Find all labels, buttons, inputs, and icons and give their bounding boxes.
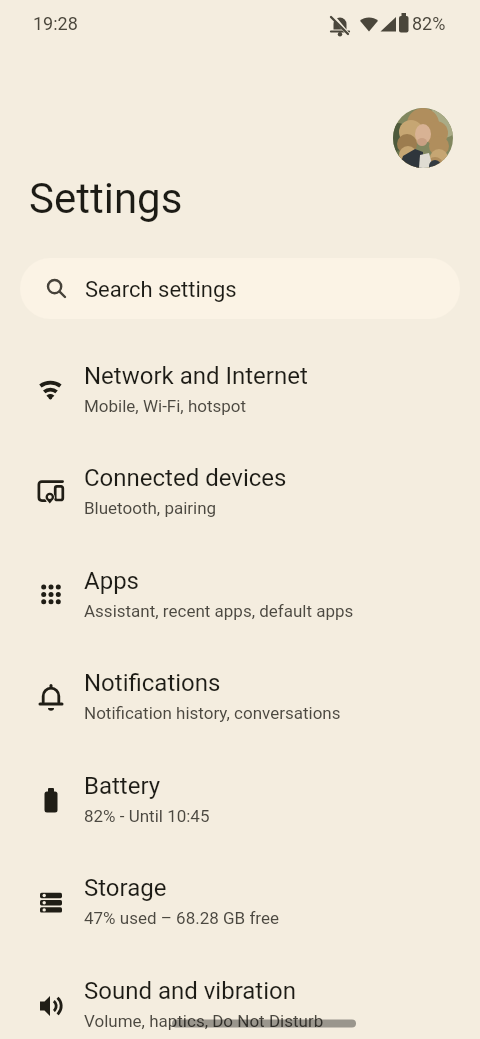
staticText: Sound and vibration <box>84 977 296 1005</box>
staticText: Volume, haptics, Do Not Disturb <box>84 1011 324 1031</box>
button[interactable]: Battery <box>0 750 480 852</box>
button[interactable]: Notifications <box>0 647 480 749</box>
staticText: Search settings <box>85 277 237 303</box>
button[interactable]: Sound and vibration <box>0 955 480 1039</box>
staticText: Notification history, conversations <box>84 703 341 723</box>
staticText: Connected devices <box>84 464 287 492</box>
staticText: Assistant, recent apps, default apps <box>84 601 354 621</box>
staticText: Battery <box>84 772 161 800</box>
staticText: Storage <box>84 874 167 902</box>
staticText: Bluetooth, pairing <box>84 498 217 518</box>
staticText: Network and Internet <box>84 362 308 390</box>
button[interactable]: Apps <box>0 545 480 647</box>
staticText: 82% - Until 10:45 <box>84 806 210 826</box>
staticText: 19:28 <box>33 13 78 34</box>
staticText: Mobile, Wi-Fi, hotspot <box>84 396 247 416</box>
button[interactable]: Network and Internet <box>0 340 480 442</box>
staticText: Apps <box>84 567 139 595</box>
staticText: 47% used – 68.28 GB free <box>84 908 279 928</box>
staticText: Notifications <box>84 669 221 697</box>
button[interactable]: Connected devices <box>0 442 480 544</box>
staticText: 82% <box>412 13 446 34</box>
button[interactable]: Search settings <box>20 258 460 319</box>
button[interactable] <box>393 108 453 168</box>
staticText: Settings <box>29 174 183 223</box>
button[interactable]: Storage <box>0 852 480 954</box>
